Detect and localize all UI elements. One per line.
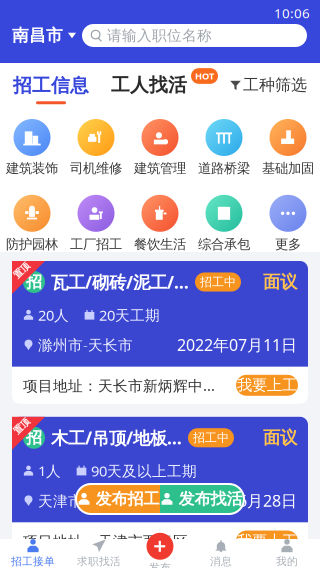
staticText: 瓦工/砌砖/泥工/… <box>51 270 189 294</box>
staticText: 招 <box>26 272 42 292</box>
button[interactable]: 请输入职位名称 <box>82 24 307 47</box>
staticText: 10:06 <box>274 4 310 22</box>
staticText: 我的 <box>276 555 298 568</box>
staticText: 我要上工 <box>237 376 297 395</box>
button[interactable]: 基础加固 <box>256 119 320 177</box>
staticText: 发布找活 <box>178 489 242 509</box>
staticText: 1人 <box>38 461 61 481</box>
staticText: 建筑管理 <box>134 160 186 177</box>
button[interactable]: 南昌市 <box>0 25 82 46</box>
staticText: 招工信息 <box>13 74 89 97</box>
staticText: 招工中 <box>200 274 236 289</box>
staticText: 置顶 <box>12 265 30 276</box>
staticText: 项目地址：天津市西青区… <box>23 531 200 551</box>
staticText: 基础加固 <box>262 160 314 177</box>
button[interactable]: 更多 <box>256 195 320 253</box>
button[interactable]: 建筑装饰 <box>0 119 64 177</box>
staticText: 20天工期 <box>99 305 160 325</box>
button[interactable]: 道路桥梁 <box>192 119 256 177</box>
staticText: 置顶 <box>12 420 30 432</box>
button[interactable]: 招工信息 <box>0 66 89 104</box>
staticText: 招 <box>26 428 42 448</box>
staticText: 消息 <box>210 555 232 568</box>
staticText: 南昌市 <box>12 25 63 46</box>
staticText: 木工/吊顶/地板… <box>51 426 182 450</box>
staticText: 道路桥梁 <box>198 160 250 177</box>
button[interactable]: 发布 <box>132 539 188 568</box>
button[interactable]: 建筑管理 <box>128 119 192 177</box>
staticText: 司机维修 <box>70 160 122 177</box>
staticText: 餐饮生活 <box>134 236 186 253</box>
staticText: 招工中 <box>193 430 229 445</box>
button[interactable]: 消息 <box>188 539 254 568</box>
staticText: 防护园林 <box>6 236 58 253</box>
staticText: 20人 <box>38 305 69 325</box>
staticText: 工种筛选 <box>243 75 307 95</box>
staticText: 综合承包 <box>198 236 250 253</box>
staticText: 项目地址：天长市新炳辉中学… <box>23 375 226 395</box>
staticText: 滁州市-天长市 <box>38 335 133 355</box>
button[interactable]: 综合承包 <box>192 195 256 253</box>
staticText: 面议 <box>263 427 297 449</box>
staticText: 面议 <box>263 271 297 293</box>
staticText: 请输入职位名称 <box>107 26 212 45</box>
staticText: 我要上工 <box>237 531 297 551</box>
button[interactable]: 餐饮生活 <box>128 195 192 253</box>
staticText: 2022年07月11日 <box>177 334 297 356</box>
staticText: 90天及以上工期 <box>91 461 197 481</box>
staticText: 求职找活 <box>77 555 121 568</box>
staticText: 2022年06月28日 <box>177 490 297 511</box>
staticText: 建筑装饰 <box>6 160 58 177</box>
staticText: 工人找活 <box>111 73 187 97</box>
staticText: HOT <box>195 70 214 82</box>
staticText: 工厂招工 <box>70 236 122 253</box>
button[interactable]: 招工接单 <box>0 539 66 568</box>
staticText: 天津市-天津市 <box>38 491 133 511</box>
staticText: 招工接单 <box>11 555 55 568</box>
button[interactable]: 工人找活 <box>111 73 214 97</box>
button[interactable]: 司机维修 <box>64 119 128 177</box>
staticText: 发布招工 <box>95 489 159 509</box>
staticText: 发布 <box>149 561 171 568</box>
button[interactable]: 工种筛选 <box>230 75 320 95</box>
staticText: 更多 <box>275 236 301 253</box>
button[interactable]: 我的 <box>254 539 320 568</box>
button[interactable]: 发布找活 <box>160 485 243 513</box>
button[interactable]: 发布招工 <box>77 485 160 513</box>
button[interactable]: 防护园林 <box>0 195 64 253</box>
button[interactable]: 工厂招工 <box>64 195 128 253</box>
button[interactable]: 求职找活 <box>66 539 132 568</box>
button[interactable]: 我要上工 <box>236 530 298 551</box>
button[interactable]: 我要上工 <box>236 375 298 396</box>
